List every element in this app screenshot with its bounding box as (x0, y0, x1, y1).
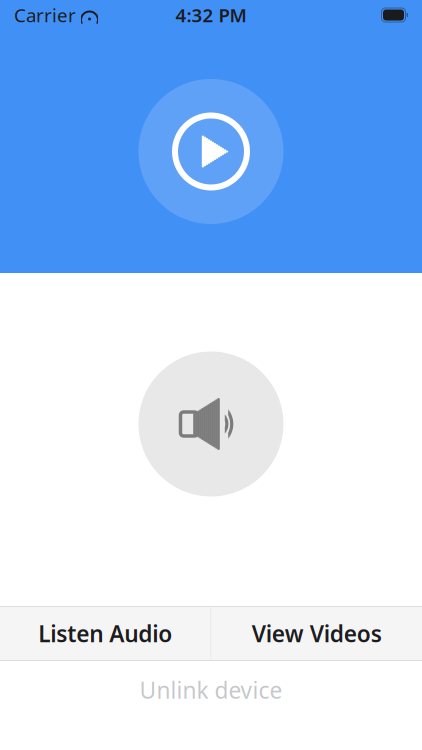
staticText: Unlink device (139, 675, 282, 705)
button[interactable]: Unlink device (0, 661, 422, 719)
button[interactable]: View Videos (211, 606, 422, 661)
staticText: Carrier (14, 3, 76, 27)
button[interactable]: Audio (138, 351, 283, 496)
staticText: View Videos (252, 618, 382, 648)
button[interactable]: Play (138, 79, 283, 224)
staticText: 4:32 PM (175, 3, 246, 27)
button[interactable]: Listen Audio (0, 606, 210, 661)
staticText: Listen Audio (38, 618, 172, 648)
